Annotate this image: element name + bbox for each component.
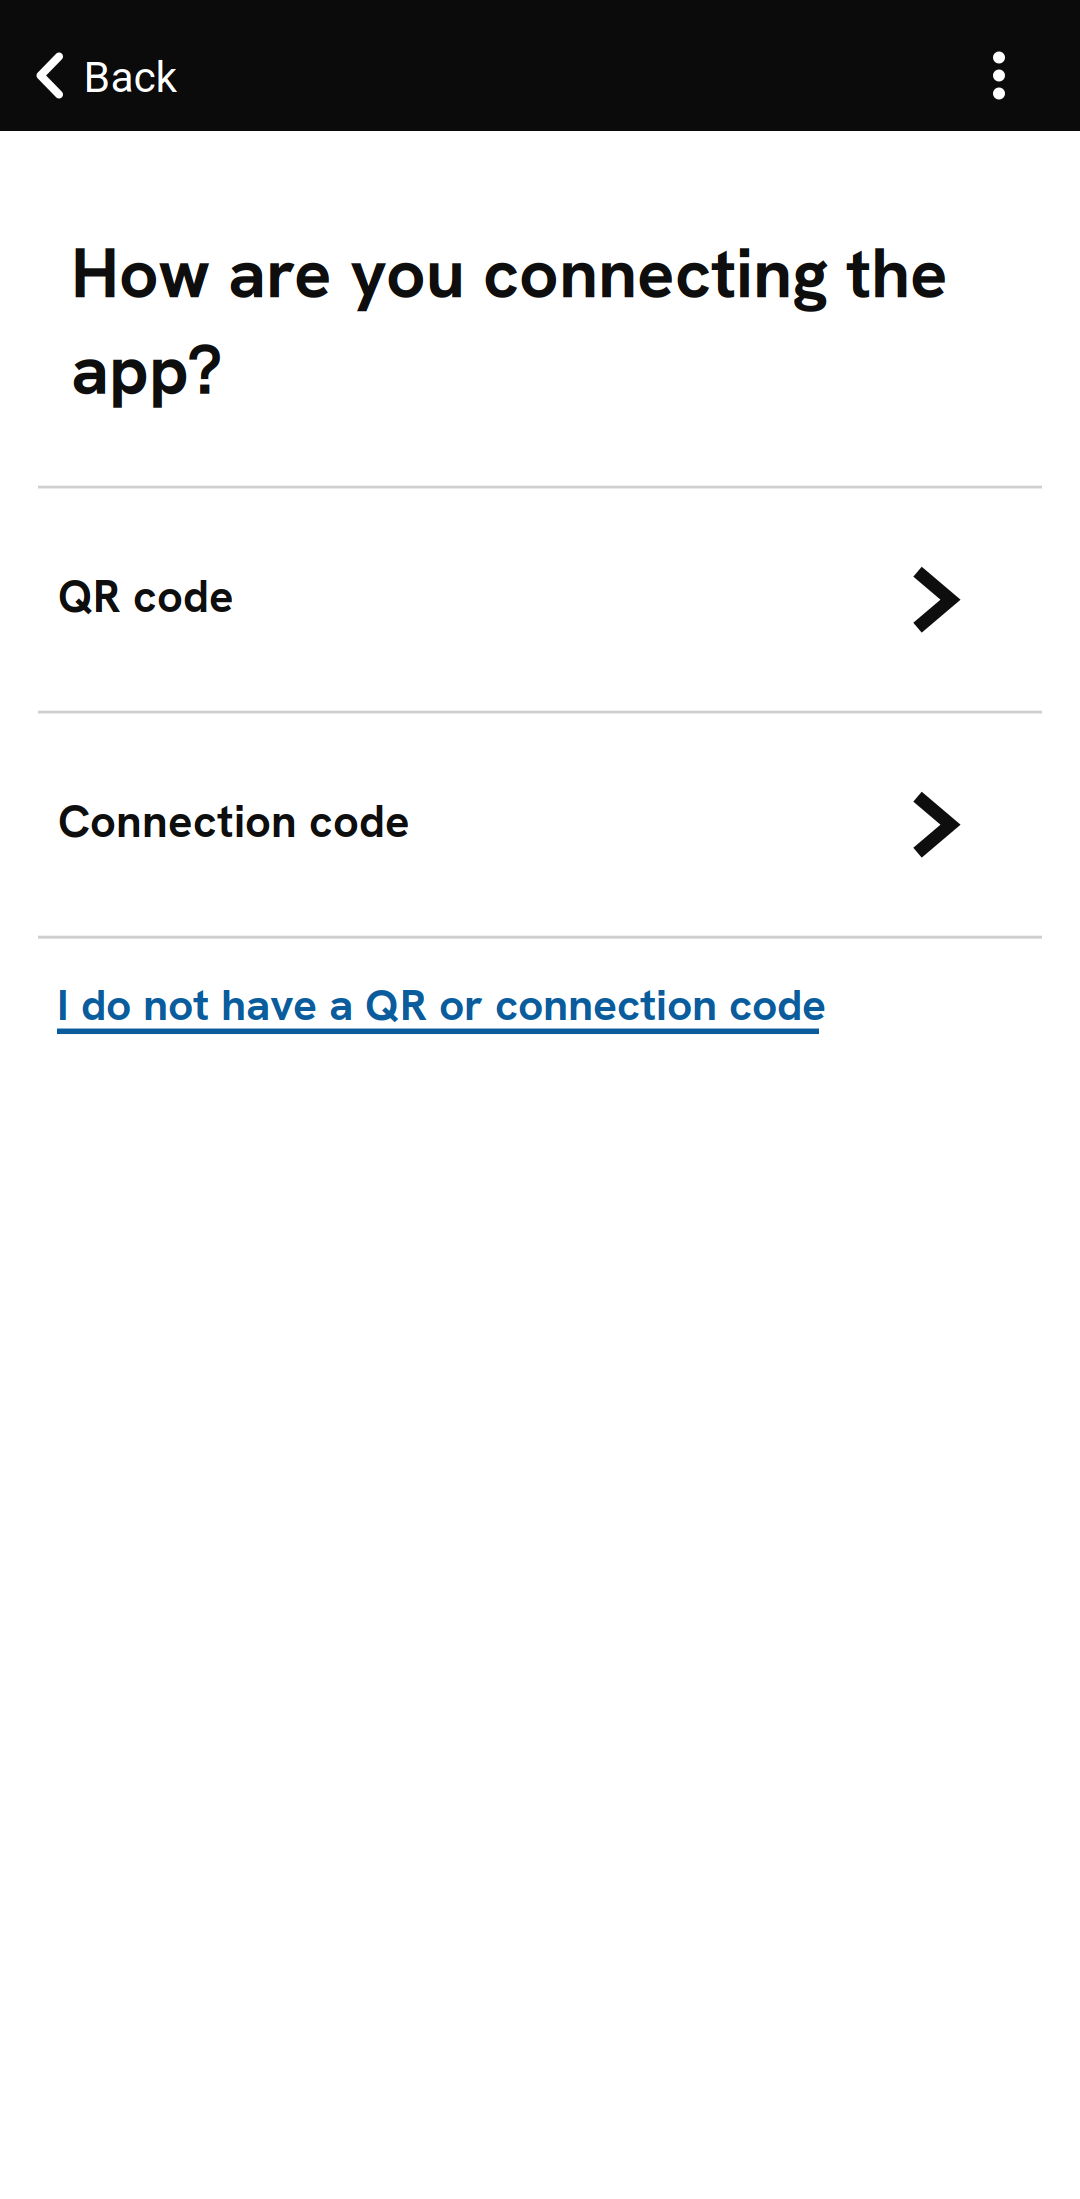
button[interactable]: More options <box>918 0 1080 131</box>
button[interactable]: Back <box>0 0 203 131</box>
staticText: How are you connecting the app? <box>71 228 948 415</box>
button[interactable]: QR code <box>0 489 1080 711</box>
staticText: QR code <box>58 567 234 626</box>
button[interactable]: Connection code <box>0 714 1080 936</box>
staticText: I do not have a QR or connection code <box>57 976 826 1034</box>
button[interactable]: I do not have a QR or connection code <box>0 939 1080 1064</box>
staticText: Connection code <box>58 792 410 851</box>
staticText: Back <box>83 52 177 102</box>
